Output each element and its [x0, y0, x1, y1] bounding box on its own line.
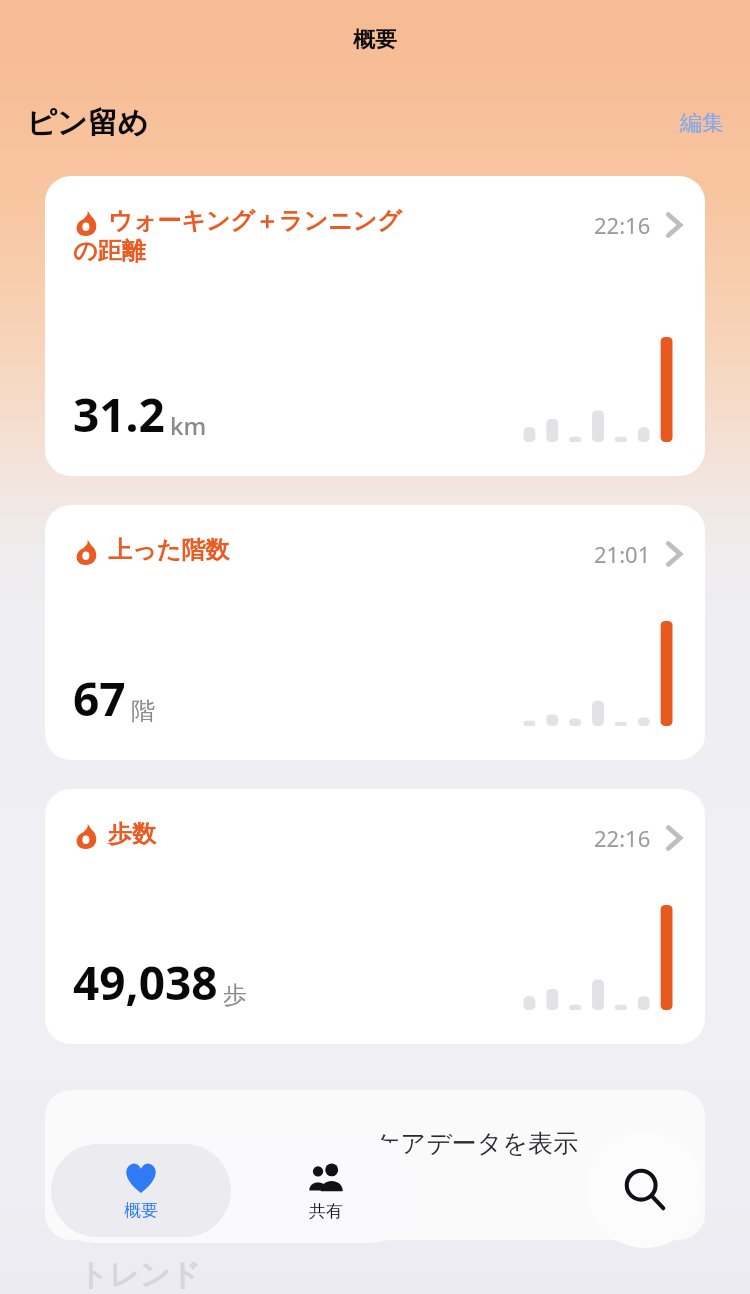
- button[interactable]: 編集: [680, 109, 724, 137]
- staticText: 21:01: [594, 539, 651, 569]
- button[interactable]: ウォーキング＋ランニング: [45, 176, 705, 476]
- staticText: 67: [73, 667, 126, 730]
- staticText: トレンド: [78, 1256, 201, 1294]
- staticText: 概要: [0, 26, 750, 54]
- staticText: ウォーキング＋ランニング: [108, 206, 402, 236]
- staticText: 概要: [124, 1200, 158, 1221]
- staticText: 上った階数: [108, 535, 230, 565]
- button[interactable]: 検索: [587, 1132, 703, 1248]
- button[interactable]: 歩数: [45, 789, 705, 1044]
- button[interactable]: ケアデータを表示: [45, 1090, 705, 1240]
- button[interactable]: 共有: [237, 1144, 415, 1237]
- button[interactable]: 上った階数: [45, 505, 705, 760]
- staticText: 31.2: [73, 383, 165, 446]
- staticText: 歩: [223, 980, 247, 1010]
- button[interactable]: 概要: [51, 1144, 231, 1237]
- staticText: 22:16: [594, 823, 651, 853]
- staticText: km: [170, 409, 207, 442]
- staticText: 共有: [309, 1201, 343, 1222]
- staticText: 編集: [680, 109, 724, 137]
- staticText: 歩数: [108, 819, 156, 849]
- staticText: 階: [131, 696, 155, 726]
- staticText: ピン留め: [26, 104, 149, 142]
- staticText: 22:16: [594, 210, 651, 240]
- staticText: ケアデータを表示: [375, 1128, 578, 1159]
- staticText: の距離: [73, 236, 146, 266]
- staticText: 49,038: [73, 951, 218, 1014]
